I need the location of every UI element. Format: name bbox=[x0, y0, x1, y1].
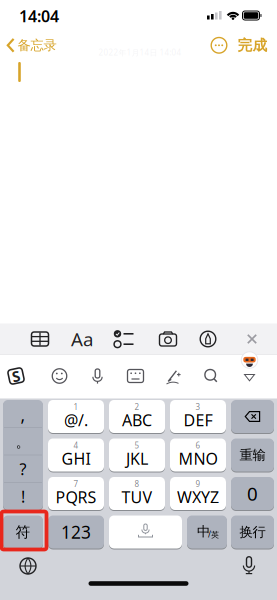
button[interactable]: 中/英 bbox=[187, 515, 227, 549]
button[interactable]: Dismiss keyboard tools bbox=[235, 323, 269, 354]
staticText: 2 bbox=[134, 401, 139, 412]
staticText: 完成 bbox=[237, 36, 267, 54]
button[interactable]: Delete bbox=[231, 400, 274, 434]
button[interactable]: Hide toolbar bbox=[234, 362, 264, 392]
button[interactable]: More bbox=[210, 36, 228, 54]
staticText: Aa bbox=[71, 327, 93, 351]
staticText: 9 bbox=[195, 478, 200, 489]
button[interactable]: Checklist bbox=[106, 323, 140, 354]
button[interactable]: ? bbox=[3, 456, 43, 482]
staticText: , bbox=[20, 403, 25, 426]
staticText: 14:04 bbox=[19, 5, 59, 27]
button[interactable]: Markup bbox=[191, 323, 225, 354]
button[interactable]: Space bbox=[109, 515, 182, 549]
button[interactable]: Back bbox=[4, 31, 66, 59]
button[interactable]: 。 bbox=[3, 429, 43, 455]
staticText: 。 bbox=[15, 433, 30, 451]
staticText: 符 bbox=[15, 523, 30, 541]
button[interactable]: Format bbox=[65, 323, 99, 354]
staticText: @/. bbox=[64, 409, 88, 431]
staticText: ! bbox=[21, 486, 25, 507]
staticText: WXYZ bbox=[177, 486, 219, 508]
button[interactable]: MNO bbox=[170, 438, 226, 472]
button[interactable]: 符 bbox=[3, 515, 43, 549]
button[interactable]: TUV bbox=[109, 477, 165, 511]
button[interactable]: Insert table bbox=[23, 323, 57, 354]
staticText: 8 bbox=[134, 478, 139, 489]
staticText: TUV bbox=[121, 486, 152, 508]
button[interactable]: Dictation bbox=[241, 556, 257, 576]
staticText: 1 bbox=[73, 401, 78, 412]
button[interactable]: 123 bbox=[48, 515, 104, 549]
button[interactable]: Camera bbox=[151, 323, 185, 354]
staticText: 7 bbox=[73, 478, 78, 489]
staticText: /英 bbox=[208, 529, 219, 540]
button[interactable]: DEF bbox=[170, 400, 226, 434]
button[interactable]: @/. bbox=[48, 400, 104, 434]
button[interactable]: 换行 bbox=[231, 515, 274, 549]
button[interactable]: PQRS bbox=[48, 477, 104, 511]
staticText: ? bbox=[19, 458, 26, 480]
button[interactable]: ! bbox=[3, 483, 43, 509]
button[interactable]: GHI bbox=[48, 438, 104, 472]
staticText: DEF bbox=[183, 409, 212, 431]
button[interactable]: Emoji bbox=[44, 361, 74, 391]
button[interactable]: , bbox=[3, 402, 43, 428]
staticText: 换行 bbox=[239, 524, 265, 540]
button[interactable]: WXYZ bbox=[170, 477, 226, 511]
button[interactable]: Voice input bbox=[82, 361, 112, 391]
staticText: 0 bbox=[247, 481, 258, 506]
button[interactable]: Sogou bbox=[1, 361, 31, 391]
button[interactable]: Stickers bbox=[120, 361, 150, 391]
staticText: PQRS bbox=[55, 486, 96, 508]
button[interactable]: Next keyboard bbox=[18, 556, 38, 576]
button[interactable]: 完成 bbox=[237, 36, 267, 54]
staticText: 5 bbox=[134, 440, 139, 451]
button[interactable]: JKL bbox=[109, 438, 165, 472]
staticText: S bbox=[12, 366, 20, 386]
staticText: GHI bbox=[61, 448, 90, 469]
staticText: MNO bbox=[178, 448, 217, 469]
staticText: 备忘录 bbox=[17, 37, 56, 53]
staticText: 4 bbox=[73, 440, 78, 451]
staticText: ABC bbox=[122, 409, 152, 431]
staticText: JKL bbox=[126, 448, 148, 469]
button[interactable]: 0 bbox=[231, 477, 274, 511]
staticText: 123 bbox=[61, 520, 91, 543]
button[interactable]: ABC bbox=[109, 400, 165, 434]
staticText: 3 bbox=[195, 401, 200, 412]
button[interactable]: Search bbox=[196, 361, 226, 391]
button[interactable]: 重输 bbox=[231, 438, 274, 472]
staticText: 6 bbox=[195, 440, 200, 451]
staticText: 中 bbox=[197, 523, 210, 540]
staticText: 重输 bbox=[239, 447, 265, 463]
button[interactable]: Handwriting bbox=[157, 361, 189, 391]
